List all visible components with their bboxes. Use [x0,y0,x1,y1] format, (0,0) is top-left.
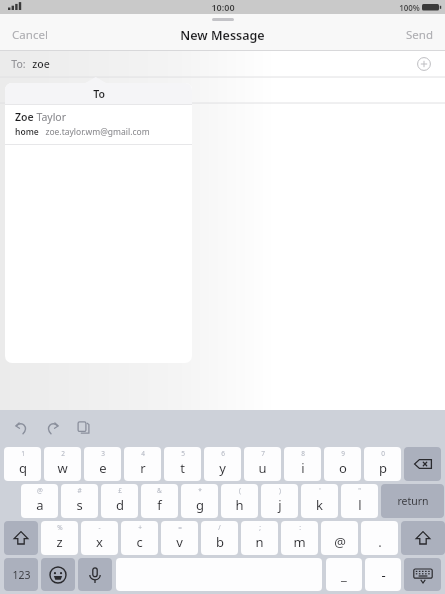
button[interactable]: £ [101,484,138,518]
staticText: g [196,496,204,514]
staticText: * [198,486,202,495]
staticText: 8 [301,449,305,458]
button[interactable]: @ [321,521,358,555]
button[interactable]: : [281,521,318,555]
staticText: - [98,523,101,532]
staticText: / [218,523,221,532]
button[interactable]: Send [396,22,443,48]
button[interactable]: _ [326,558,362,591]
staticText: # [77,486,82,495]
staticText: " [358,486,361,495]
staticText: 5 [181,449,185,458]
staticText: 2 [61,449,65,458]
staticText: @ [334,533,346,551]
button[interactable]: * [181,484,218,518]
staticText: New Message [180,27,265,44]
button[interactable]: ) [261,484,298,518]
staticText: t [180,459,185,477]
button[interactable]: 1 [4,447,41,481]
button[interactable]: # [61,484,98,518]
button[interactable]: 6 [204,447,241,481]
button[interactable]: 2 [44,447,81,481]
button[interactable]: @ [21,484,58,518]
button[interactable]: Undo [11,417,31,437]
button[interactable]: ' [301,484,338,518]
button[interactable]: return [381,484,444,518]
staticText: i [301,459,305,477]
button[interactable]: . [361,521,398,555]
staticText: n [255,533,264,551]
staticText: ) [279,486,281,495]
staticText: d [116,496,124,514]
staticText: j [278,496,282,514]
staticText: f [157,496,162,514]
staticText: b [216,533,224,551]
staticText: 100% [399,2,420,13]
staticText: e [99,459,107,477]
staticText: _ [341,566,347,584]
button[interactable]: Shift [4,521,38,555]
staticText: x [96,533,103,551]
staticText: c [136,533,143,551]
button[interactable]: Cancel [2,22,58,48]
staticText: v [176,533,183,551]
button[interactable]: Zoe Taylor [5,105,192,144]
staticText: u [258,459,267,477]
button[interactable]: Dictation [78,558,112,591]
button[interactable]: 4 [124,447,161,481]
staticText: 7 [261,449,265,458]
button[interactable]: - [81,521,118,555]
button[interactable]: 3 [84,447,121,481]
staticText: l [358,496,362,514]
button[interactable]: Add contact [414,54,434,74]
button[interactable]: - [365,558,401,591]
staticText: q [19,459,27,477]
button[interactable]: ( [221,484,258,518]
button[interactable]: Hide keyboard [404,558,441,591]
button[interactable]: Shift [401,521,445,555]
staticText: - [381,566,386,584]
button[interactable]: ; [241,521,278,555]
button[interactable]: 123 [4,558,38,591]
staticText: : [299,523,301,532]
staticText: ( [239,486,241,495]
button[interactable]: 7 [244,447,281,481]
staticText: 1 [21,449,25,458]
staticText: ; [259,523,261,532]
button[interactable]: + [121,521,158,555]
staticText: s [76,496,83,514]
staticText: @ [37,486,43,495]
button[interactable]: % [41,521,78,555]
button[interactable]: " [341,484,378,518]
button[interactable]: / [201,521,238,555]
staticText: w [57,459,68,477]
button[interactable]: Paste [73,417,93,437]
staticText: £ [118,486,122,495]
button[interactable]: 0 [364,447,401,481]
staticText: To: [11,57,26,71]
staticText: = [178,523,182,532]
staticText: Zoe Taylor [15,110,67,124]
staticText: Send [406,27,433,43]
staticText: o [339,459,347,477]
button[interactable]: 9 [324,447,361,481]
staticText: p [379,459,387,477]
staticText: 9 [341,449,345,458]
button[interactable]: = [161,521,198,555]
button[interactable]: 5 [164,447,201,481]
staticText: 123 [12,568,31,582]
button[interactable]: & [141,484,178,518]
staticText: 0 [381,449,385,458]
staticText: % [57,523,63,532]
staticText: r [140,459,146,477]
staticText: k [316,496,323,514]
staticText: . [378,533,382,551]
button[interactable]: Redo [42,417,62,437]
staticText: h [235,496,244,514]
staticText: home zoe.taylor.wm@gmail.com [15,126,150,138]
staticText: To [93,87,105,101]
button[interactable]: 8 [284,447,321,481]
button[interactable]: Backspace [404,447,441,481]
button[interactable]: Emoji [41,558,75,591]
